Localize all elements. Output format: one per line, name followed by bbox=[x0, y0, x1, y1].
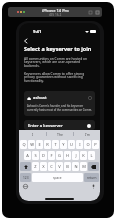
staticText: Keyservers allow Comm to offer strong pr… bbox=[24, 71, 95, 83]
staticText: Enter a keyserver bbox=[28, 123, 63, 127]
button[interactable]: Y bbox=[60, 140, 67, 149]
button[interactable]: Backspace bbox=[88, 162, 99, 171]
button[interactable]: The bbox=[47, 130, 73, 138]
staticText: L bbox=[90, 153, 93, 158]
button[interactable]: A bbox=[24, 151, 31, 160]
staticText: ashoat bbox=[33, 95, 47, 101]
button[interactable]: I'm bbox=[74, 130, 100, 138]
button[interactable]: R bbox=[44, 140, 51, 149]
button[interactable]: Back bbox=[24, 37, 32, 44]
staticText: D bbox=[42, 153, 45, 158]
staticText: Ashoat is Comm's founder, and his keyser… bbox=[27, 104, 92, 112]
button[interactable]: Enter a keyserver bbox=[24, 120, 95, 130]
staticText: 9:41 bbox=[33, 29, 42, 35]
staticText: Y bbox=[62, 142, 65, 147]
button[interactable]: V bbox=[56, 162, 63, 171]
staticText: P bbox=[94, 142, 97, 147]
button[interactable]: Q bbox=[20, 140, 27, 149]
staticText: H bbox=[66, 153, 69, 158]
staticText: 123 bbox=[23, 176, 29, 180]
button[interactable]: J bbox=[72, 151, 79, 160]
staticText: return bbox=[87, 176, 97, 180]
button[interactable]: Dictate bbox=[91, 184, 96, 189]
button[interactable]: H bbox=[64, 151, 71, 160]
button[interactable]: return bbox=[84, 173, 99, 182]
staticText: The bbox=[57, 132, 63, 137]
button[interactable]: space bbox=[32, 173, 83, 182]
staticText: W bbox=[30, 142, 34, 147]
button[interactable]: W bbox=[28, 140, 35, 149]
staticText: X bbox=[42, 164, 45, 169]
button[interactable]: Z bbox=[32, 162, 39, 171]
button[interactable]: N bbox=[72, 162, 79, 171]
staticText: T bbox=[54, 142, 57, 147]
button[interactable]: F bbox=[48, 151, 55, 160]
button[interactable]: B bbox=[64, 162, 71, 171]
staticText: Select a keyserver to join bbox=[24, 45, 92, 52]
staticText: F bbox=[50, 153, 53, 158]
staticText: J bbox=[75, 153, 77, 158]
button[interactable]: L bbox=[88, 151, 95, 160]
button[interactable]: T bbox=[52, 140, 59, 149]
button[interactable]: X bbox=[40, 162, 47, 171]
staticText: K bbox=[82, 153, 85, 158]
staticText: V bbox=[58, 164, 61, 169]
staticText: G bbox=[58, 153, 61, 158]
button[interactable]: O bbox=[84, 140, 91, 149]
staticText: S bbox=[34, 153, 37, 158]
staticText: O bbox=[86, 142, 90, 147]
button[interactable]: U bbox=[68, 140, 75, 149]
staticText: I bbox=[32, 132, 34, 137]
staticText: M bbox=[82, 164, 86, 169]
staticText: All communities on Comm are hosted on ke… bbox=[24, 56, 95, 68]
button[interactable]: M bbox=[80, 162, 87, 171]
button[interactable]: S bbox=[32, 151, 39, 160]
staticText: B bbox=[66, 164, 69, 169]
staticText: space bbox=[53, 176, 62, 180]
staticText: U bbox=[70, 142, 73, 147]
button[interactable]: G bbox=[56, 151, 63, 160]
staticText: E bbox=[38, 142, 41, 147]
staticText: Z bbox=[34, 164, 37, 169]
staticText: Q bbox=[22, 142, 26, 147]
staticText: C bbox=[50, 164, 53, 169]
staticText: N bbox=[74, 164, 78, 169]
button[interactable]: More options bbox=[95, 10, 100, 15]
staticText: A bbox=[26, 153, 29, 158]
button[interactable]: I bbox=[76, 140, 83, 149]
button[interactable]: I bbox=[19, 130, 46, 138]
staticText: iOS 16.2 bbox=[49, 13, 62, 17]
button[interactable]: 123 bbox=[20, 173, 31, 182]
staticText: I'm bbox=[85, 132, 90, 137]
button[interactable]: P bbox=[92, 140, 99, 149]
button[interactable]: C bbox=[48, 162, 55, 171]
button[interactable]: Screenshot bbox=[89, 11, 92, 14]
button[interactable]: E bbox=[36, 140, 43, 149]
button[interactable]: ashoat bbox=[24, 91, 95, 116]
staticText: R bbox=[46, 142, 49, 147]
button[interactable]: Switch keyboard bbox=[23, 184, 28, 189]
button[interactable]: Shift bbox=[20, 162, 31, 171]
button[interactable]: D bbox=[40, 151, 47, 160]
staticText: I bbox=[79, 142, 81, 147]
button[interactable]: K bbox=[80, 151, 87, 160]
staticText: iPhone 14 Pro bbox=[42, 8, 69, 13]
